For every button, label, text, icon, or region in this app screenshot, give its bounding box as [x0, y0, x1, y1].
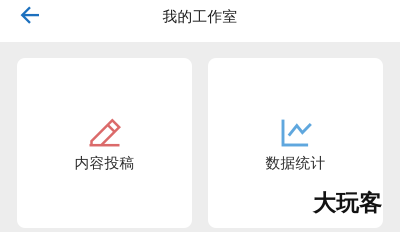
- staticText: 内容投稿: [74, 154, 134, 172]
- button[interactable]: 内容投稿: [17, 58, 192, 228]
- button[interactable]: Back: [0, 1, 52, 31]
- staticText: 我的工作室: [162, 7, 237, 25]
- staticText: 大玩客: [313, 189, 382, 217]
- staticText: 数据统计: [265, 154, 325, 172]
- button[interactable]: 数据统计: [208, 58, 383, 228]
